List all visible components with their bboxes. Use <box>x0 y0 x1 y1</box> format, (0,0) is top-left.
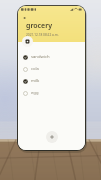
button[interactable]: Edit list <box>22 36 33 47</box>
staticText: milk <box>31 78 40 84</box>
button[interactable]: Back <box>21 14 28 21</box>
staticText: cola <box>31 66 39 72</box>
staticText: egg <box>31 90 39 96</box>
button[interactable]: milk <box>18 75 85 87</box>
button[interactable]: Add item <box>46 131 58 143</box>
button[interactable]: egg <box>18 87 85 99</box>
staticText: grocery <box>26 21 53 31</box>
button[interactable]: cola <box>18 63 85 75</box>
staticText: sandwich <box>31 54 50 60</box>
button[interactable]: sandwich <box>18 51 85 63</box>
staticText: 2021.12.18 08:22 a.m. <box>26 33 59 37</box>
